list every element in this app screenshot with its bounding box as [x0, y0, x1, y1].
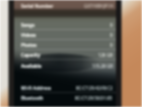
staticText: Songs: [21, 22, 35, 28]
button[interactable]: Serial Number: [14, 0, 116, 11]
staticText: 0: [110, 22, 113, 28]
button[interactable]: Songs: [14, 20, 116, 30]
staticText: Videos: [21, 32, 36, 38]
staticText: Wi-Fi Address: [21, 85, 52, 91]
staticText: Available: [21, 63, 42, 69]
staticText: 0: [110, 32, 113, 38]
button[interactable]: Capacity: [14, 50, 116, 60]
button[interactable]: Available: [14, 60, 116, 71]
staticText: G6TYVBHJP1H: [84, 3, 113, 9]
staticText: 128 GB: [98, 52, 113, 58]
button[interactable]: Bluetooth: [14, 93, 116, 103]
button[interactable]: Photos: [14, 40, 116, 50]
staticText: 0: [110, 42, 113, 48]
staticText: 8C:C7:29:50:D1:85: [75, 95, 113, 101]
button[interactable]: Videos: [14, 30, 116, 40]
button[interactable]: Wi-Fi Address: [14, 83, 116, 93]
staticText: Serial Number: [21, 3, 54, 9]
staticText: Capacity: [21, 52, 41, 58]
staticText: 8C:C7:29:42:F8:C2: [76, 85, 113, 91]
staticText: Photos: [21, 42, 37, 48]
staticText: Bluetooth: [21, 95, 44, 101]
staticText: 115.28 GB: [92, 63, 113, 69]
